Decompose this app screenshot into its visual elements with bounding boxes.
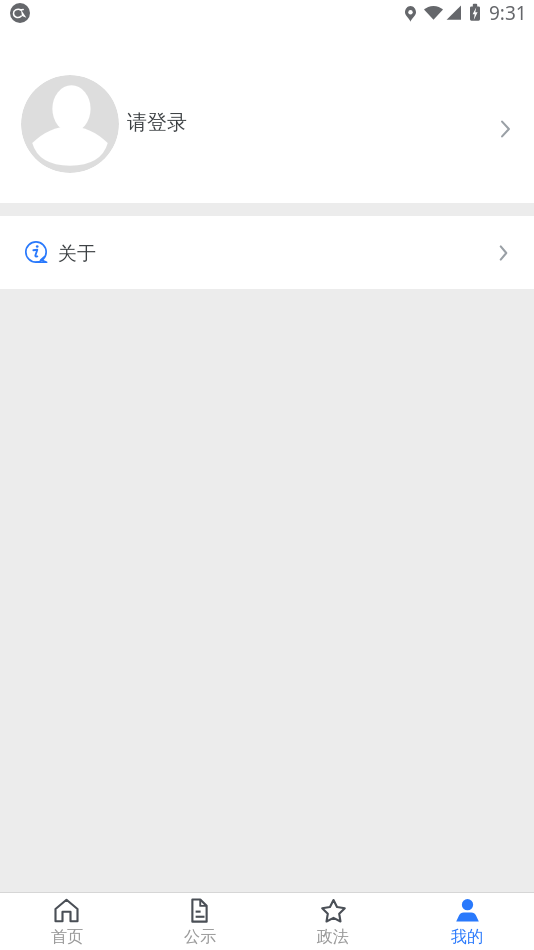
staticText: 关于 [58, 242, 96, 266]
button[interactable]: 请登录 [0, 44, 534, 203]
other: App notification [10, 3, 30, 23]
staticText: 9:31 [489, 0, 527, 26]
staticText: 请登录 [127, 110, 187, 135]
button[interactable]: 关于 [0, 216, 534, 289]
other: About [499, 245, 508, 261]
other: Sign in [500, 120, 511, 138]
staticText: 公示 [184, 927, 216, 947]
staticText: 我的 [451, 927, 483, 947]
staticText: 政法 [317, 927, 349, 947]
staticText: 首页 [51, 927, 83, 947]
button[interactable]: 公示 [133, 897, 266, 946]
button[interactable]: 政法 [266, 897, 400, 946]
button[interactable]: 我的 [400, 897, 534, 946]
button[interactable]: 首页 [0, 897, 133, 946]
